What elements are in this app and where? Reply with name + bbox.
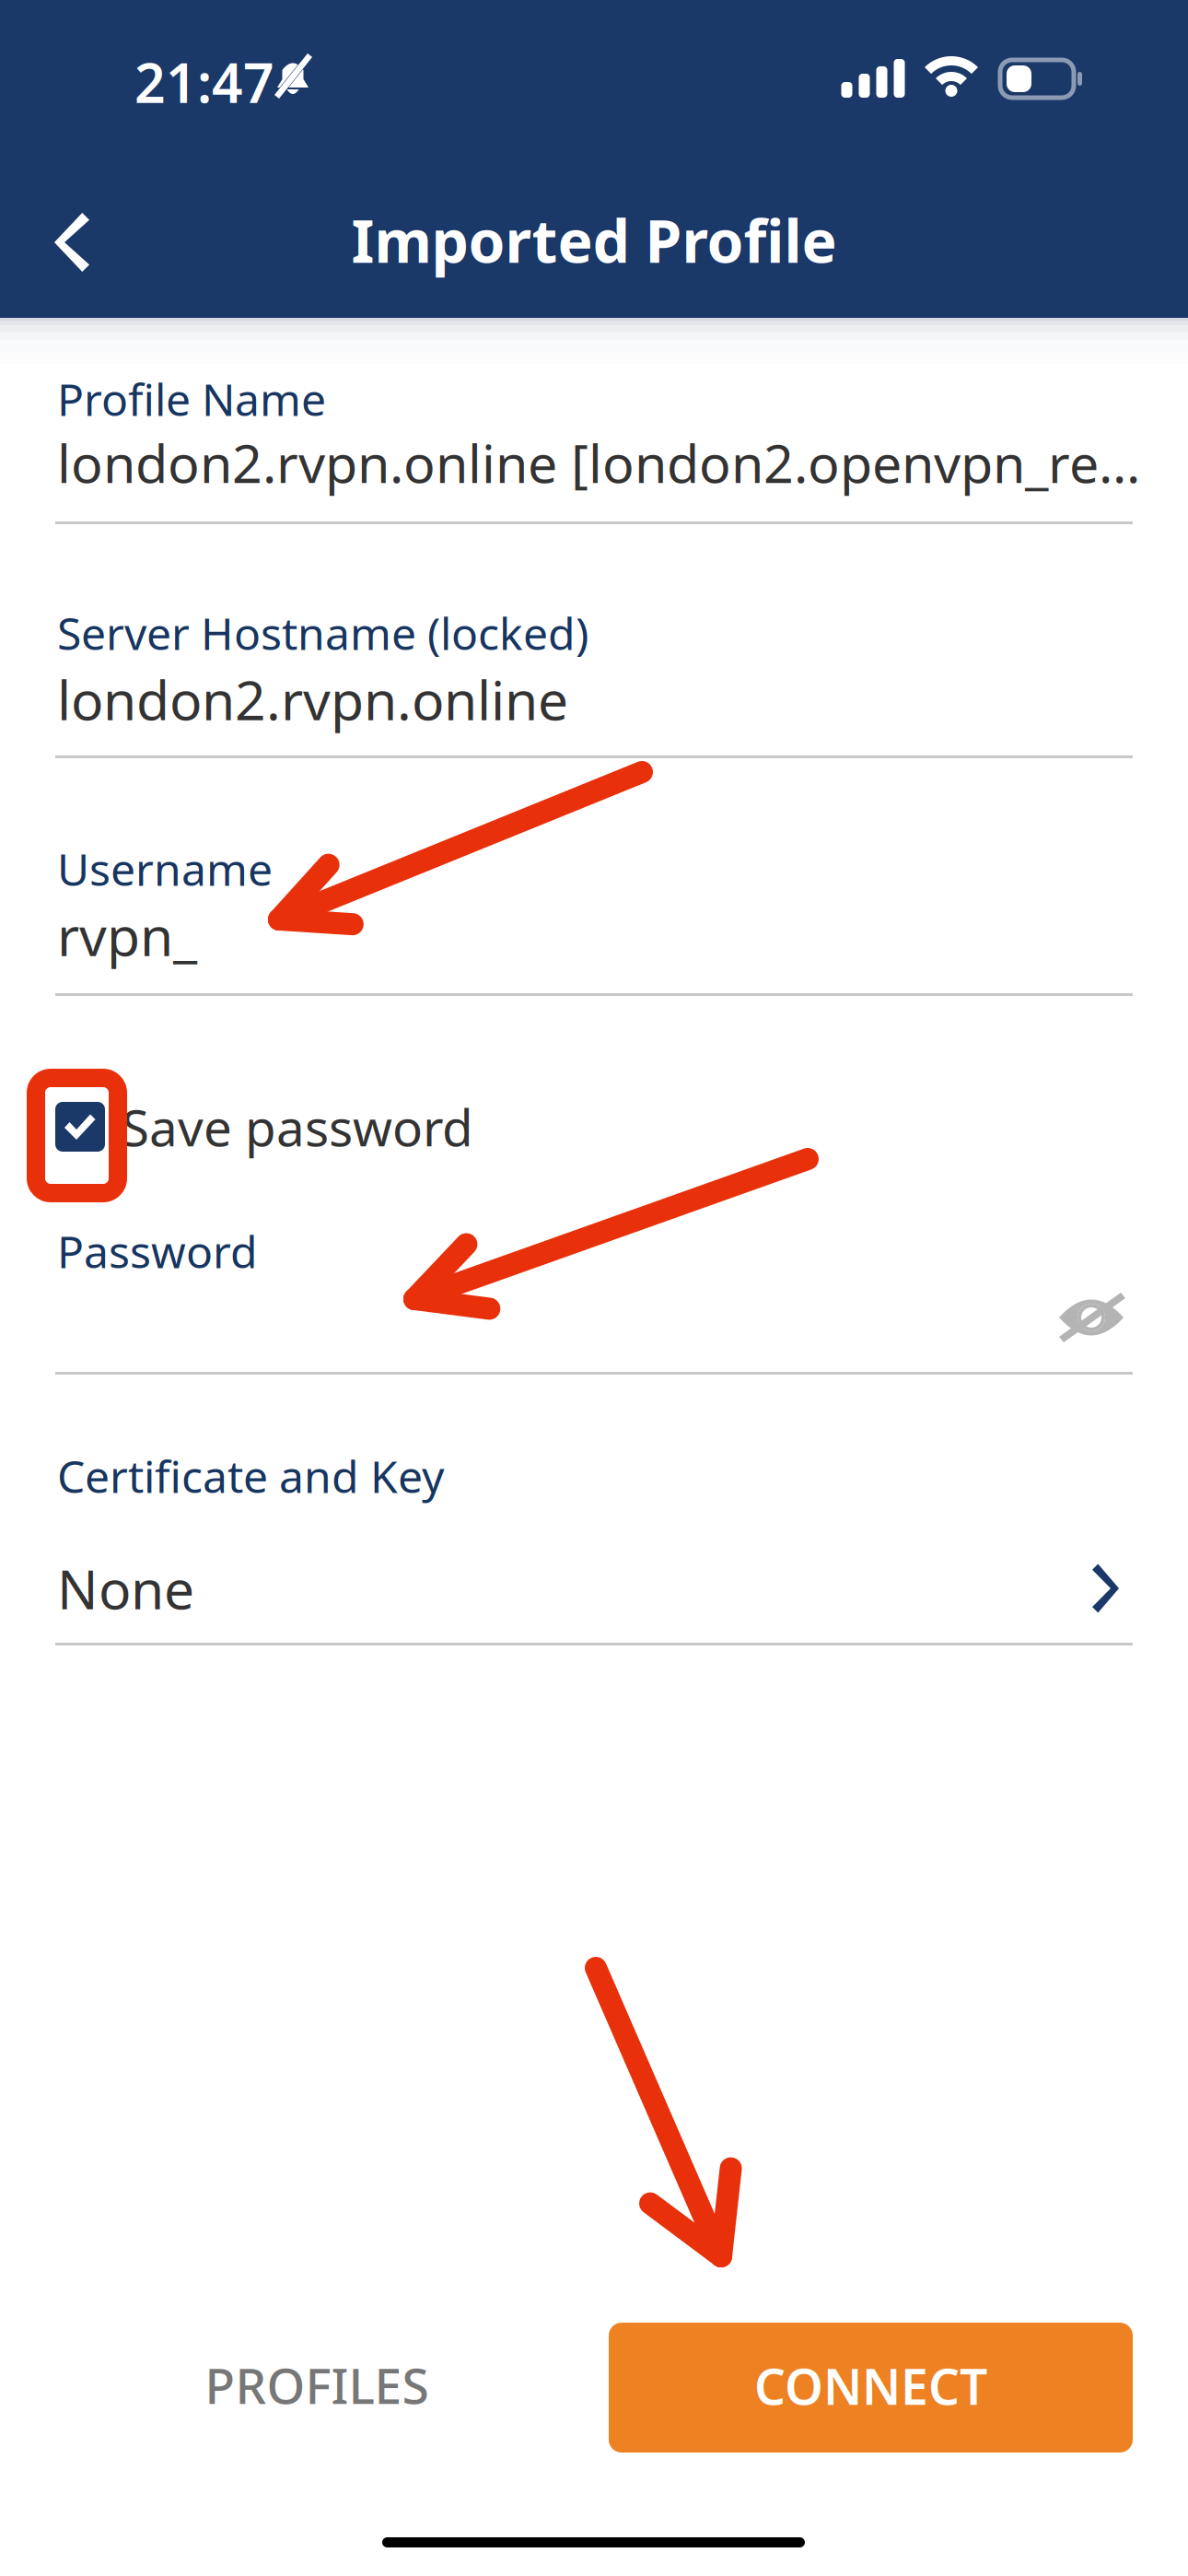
staticText: Imported Profile — [351, 201, 837, 279]
staticText: rvpn_ — [57, 899, 197, 971]
button[interactable]: Back — [17, 187, 127, 298]
staticText: Save password — [122, 1093, 473, 1160]
button[interactable]: None — [57, 1544, 1119, 1633]
staticText: 21:47 — [134, 46, 274, 118]
staticText: Username — [57, 839, 273, 898]
button[interactable]: Save password — [55, 1092, 571, 1162]
staticText: london2.rvpn.online — [57, 663, 568, 735]
button[interactable]: PROFILES — [123, 2320, 510, 2450]
staticText: PROFILES — [205, 2352, 429, 2417]
staticText: Profile Name — [57, 369, 326, 428]
staticText: CONNECT — [754, 2353, 987, 2418]
staticText: None — [57, 1552, 194, 1624]
staticText: london2.rvpn.online [london2.openvpn_re.… — [57, 427, 1140, 498]
staticText: Password — [57, 1222, 258, 1280]
button[interactable]: CONNECT — [609, 2323, 1133, 2453]
button[interactable]: Show password — [1037, 1267, 1147, 1368]
staticText: Certificate and Key — [57, 1446, 444, 1505]
staticText: Server Hostname (locked) — [57, 603, 588, 662]
